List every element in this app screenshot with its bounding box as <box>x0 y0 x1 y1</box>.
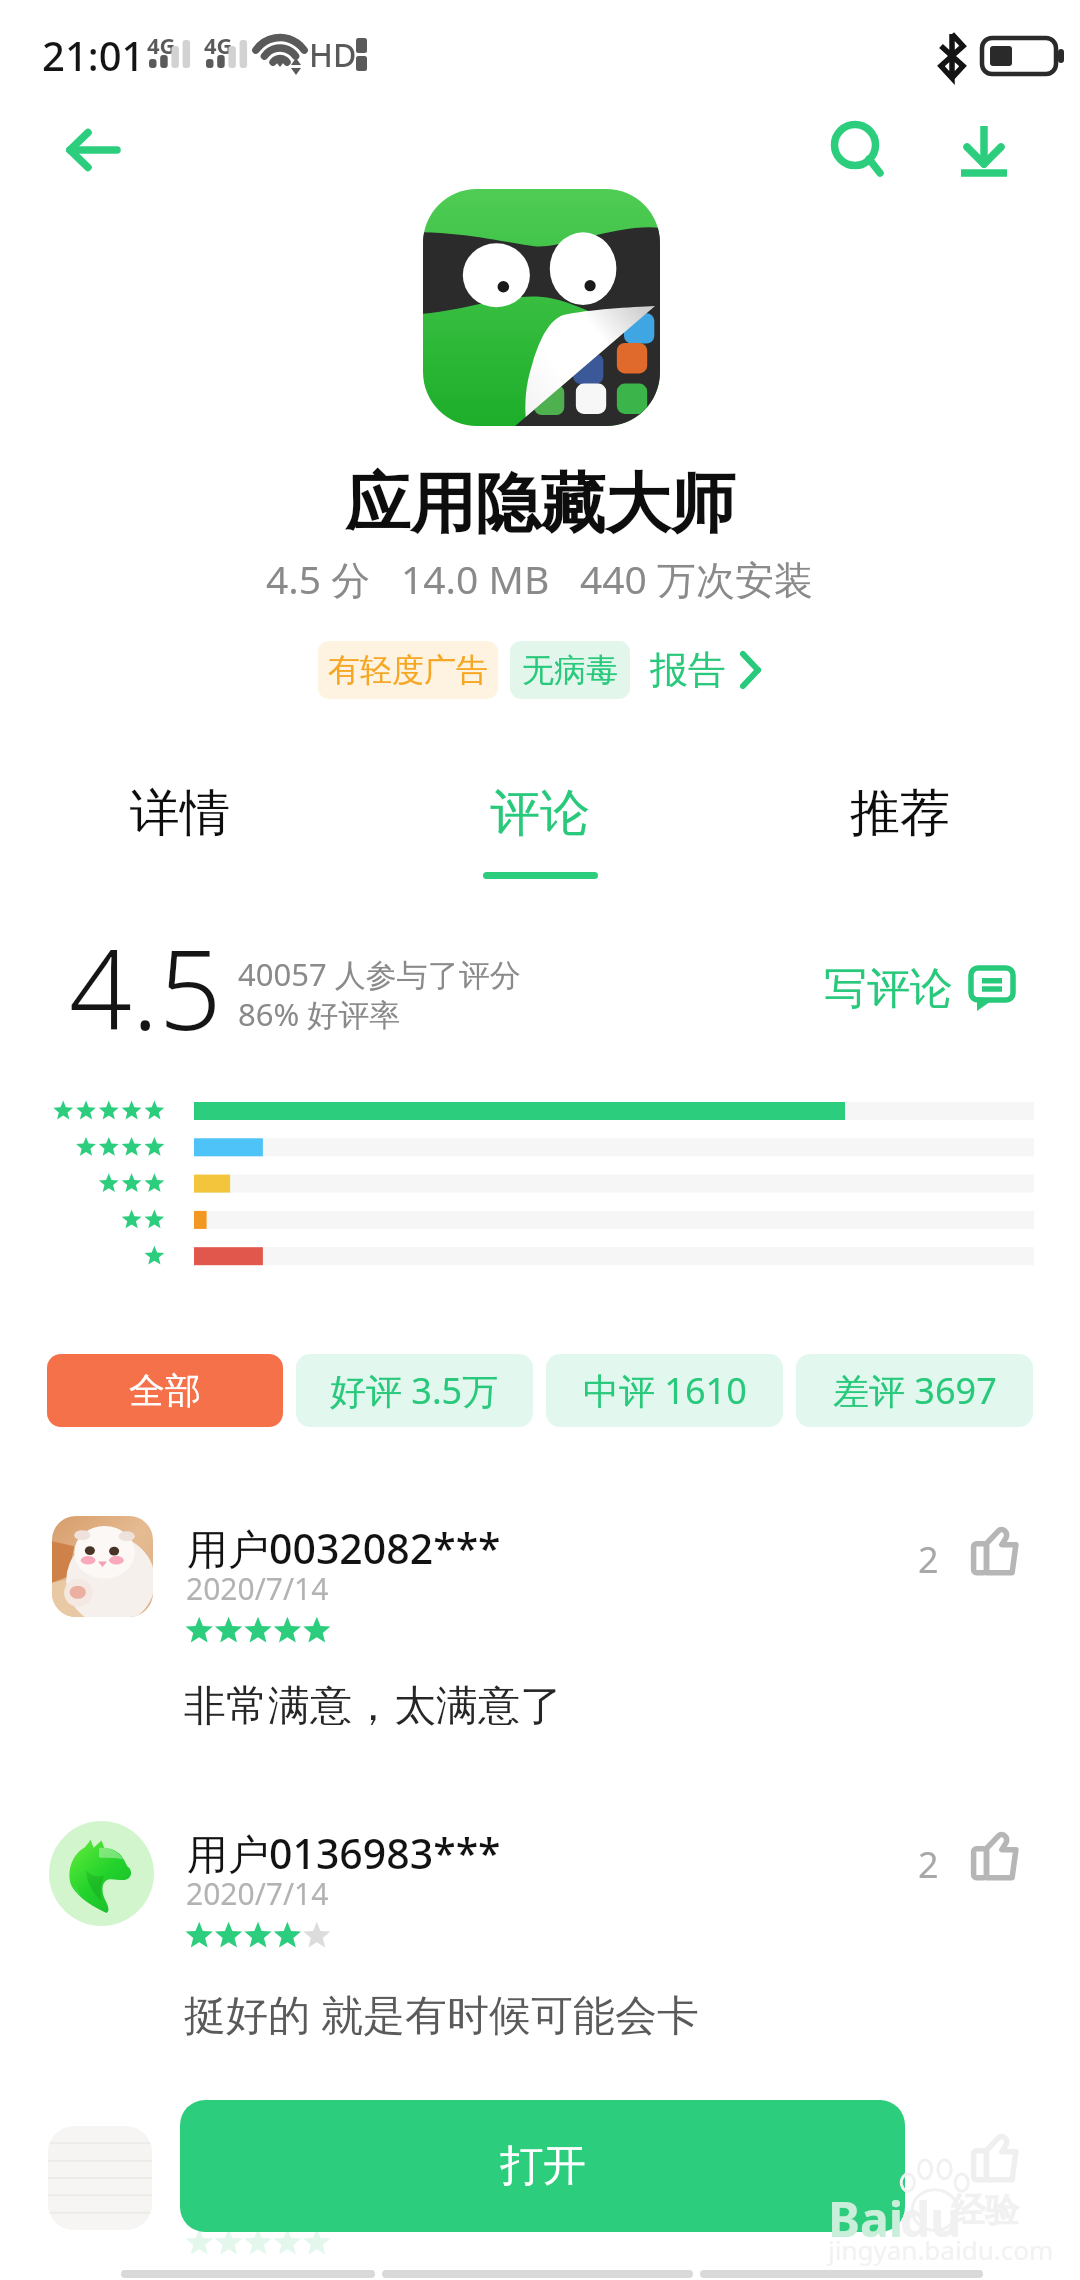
staticText: du <box>900 2186 962 2251</box>
button[interactable]: 推荐 <box>720 768 1080 898</box>
staticText: 报告 <box>650 646 726 694</box>
button[interactable]: Like <box>916 1825 1032 1885</box>
staticText: 86% 好评率 <box>238 993 401 1035</box>
staticText: 4G <box>204 30 233 60</box>
staticText: 应用隐藏大师 <box>345 463 735 545</box>
staticText: 14.0 MB <box>401 552 550 605</box>
staticText: HD <box>309 33 357 77</box>
staticText: 2 <box>918 1840 939 1889</box>
staticText: 40057 人参与了评分 <box>238 953 521 995</box>
button[interactable]: Search <box>811 102 899 190</box>
button[interactable]: 无病毒 <box>510 641 630 699</box>
staticText: jingyan.baidu.com <box>828 2232 1054 2267</box>
staticText: 440 万次安装 <box>580 552 814 605</box>
staticText: 写评论 <box>824 962 953 1016</box>
staticText: 推荐 <box>850 782 950 845</box>
staticText: 详情 <box>130 782 230 845</box>
staticText: 4G <box>147 30 176 60</box>
staticText: 打开 <box>500 2139 586 2193</box>
button[interactable]: Download <box>940 102 1028 190</box>
staticText: 2020/7/14 <box>186 1568 329 1609</box>
button[interactable]: Like <box>916 1520 1032 1580</box>
button[interactable]: 中评 1610 <box>546 1354 783 1427</box>
staticText: 全部 <box>129 1368 201 1413</box>
button[interactable]: 有轻度广告 <box>318 641 498 699</box>
staticText: 21:01 <box>42 28 145 82</box>
button[interactable]: Back <box>49 106 137 194</box>
staticText: 4.5 <box>69 912 222 1042</box>
staticText: 用户0032082*** <box>187 1520 501 1576</box>
button[interactable]: 差评 3697 <box>796 1354 1033 1427</box>
button[interactable]: 打开 <box>180 2100 905 2232</box>
button[interactable]: 写评论 <box>824 962 1016 1016</box>
staticText: 用户0136983*** <box>187 1825 501 1881</box>
button[interactable]: 全部 <box>47 1354 283 1427</box>
staticText: 2 <box>918 1535 939 1584</box>
staticText: 中评 1610 <box>583 1366 747 1415</box>
staticText: 经验 <box>951 2189 1019 2232</box>
staticText: 评论 <box>490 782 590 845</box>
staticText: 挺好的 就是有时候可能会卡 <box>184 1985 699 2042</box>
staticText: 非常满意，太满意了 <box>184 1680 562 1733</box>
staticText: 好评 3.5万 <box>330 1366 499 1415</box>
button[interactable]: 详情 <box>0 768 360 898</box>
staticText: 4.5 分 <box>266 552 371 605</box>
staticText: 无病毒 <box>522 650 618 690</box>
staticText: 2020/7/14 <box>186 1873 329 1914</box>
button[interactable]: 报告 <box>646 641 766 699</box>
button[interactable]: 好评 3.5万 <box>296 1354 533 1427</box>
staticText: Bai <box>828 2186 904 2251</box>
button[interactable]: 评论 <box>360 768 720 898</box>
staticText: 差评 3697 <box>833 1366 997 1415</box>
staticText: 有轻度广告 <box>328 650 488 690</box>
